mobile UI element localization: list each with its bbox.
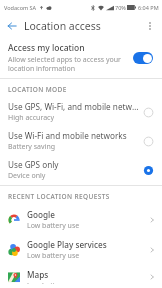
staticText: Low battery use — [27, 251, 80, 261]
staticText: Device only — [8, 171, 46, 181]
button[interactable]: Use GPS, Wi-Fi, and mobile networks — [0, 98, 162, 127]
staticText: High accuracy — [8, 113, 55, 123]
button[interactable]: Google — [0, 205, 162, 235]
staticText: Use GPS only — [8, 159, 59, 170]
staticText: Google Play services — [27, 239, 107, 250]
staticText: Use Wi-Fi and mobile networks — [8, 130, 127, 141]
staticText: Allow selected apps to access your locat… — [8, 55, 126, 73]
button[interactable]: Use Wi-Fi and mobile networks — [0, 127, 162, 156]
staticText: Low battery use — [27, 281, 80, 284]
button[interactable]: More options — [141, 17, 159, 35]
staticText: Access my location — [8, 42, 85, 54]
staticText: 6:04 PM — [138, 4, 159, 11]
staticText: Google — [27, 209, 55, 220]
staticText: 70% — [115, 4, 126, 11]
staticText: Use GPS, Wi-Fi, and mobile networks — [8, 101, 139, 112]
staticText: LOCATION MODE — [8, 85, 67, 94]
button[interactable]: Maps — [0, 265, 162, 288]
staticText: Low battery use — [27, 221, 80, 231]
staticText: RECENT LOCATION REQUESTS — [8, 192, 110, 201]
staticText: Vodacom SA — [4, 4, 37, 11]
staticText: Maps — [27, 269, 49, 280]
button[interactable]: Use GPS only — [0, 156, 162, 185]
button[interactable]: Google Play services — [0, 235, 162, 265]
staticText: Battery saving — [8, 142, 56, 152]
button[interactable]: Access my location — [0, 38, 162, 78]
staticText: Location access — [24, 19, 101, 33]
button[interactable]: Back — [3, 17, 21, 35]
